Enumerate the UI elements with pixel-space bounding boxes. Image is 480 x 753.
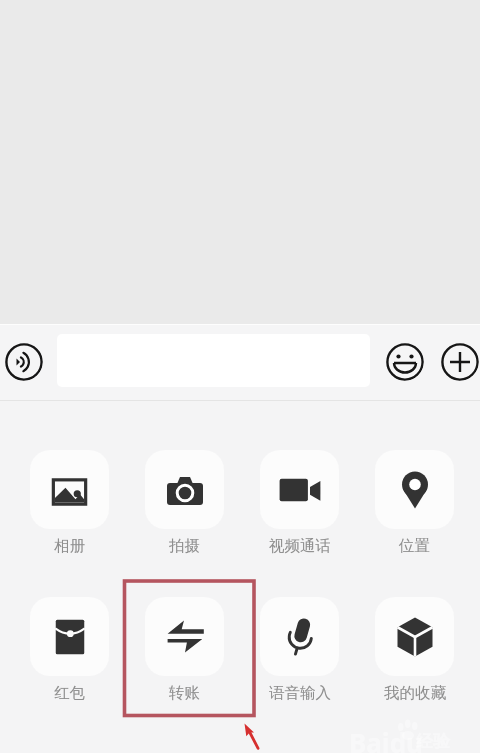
staticText: 相册 — [54, 536, 85, 556]
staticText: 拍摄 — [169, 536, 200, 556]
staticText: 我的收藏 — [384, 683, 446, 703]
button[interactable] — [145, 450, 224, 529]
button[interactable] — [30, 597, 109, 676]
staticText: 位置 — [399, 536, 430, 556]
button[interactable]: Voice input — [4, 342, 43, 381]
button[interactable] — [375, 597, 454, 676]
button[interactable] — [260, 597, 339, 676]
staticText: 视频通话 — [269, 536, 331, 556]
staticText: 转账 — [169, 683, 200, 703]
staticText: 红包 — [54, 683, 85, 703]
staticText: 语音输入 — [269, 683, 331, 703]
button[interactable] — [260, 450, 339, 529]
button[interactable] — [375, 450, 454, 529]
button[interactable] — [30, 450, 109, 529]
button[interactable]: More — [440, 342, 479, 381]
button[interactable] — [145, 597, 224, 676]
button[interactable]: Emoji — [385, 342, 424, 381]
